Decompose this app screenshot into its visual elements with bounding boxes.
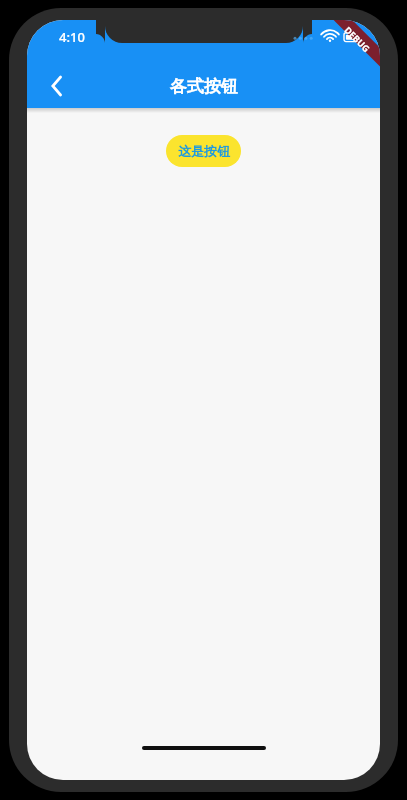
button[interactable]: Back (37, 66, 77, 106)
staticText: 4:10 (59, 28, 85, 46)
button[interactable]: 这是按钮 (166, 135, 241, 167)
staticText: DEBUG (342, 24, 373, 54)
staticText: 各式按钮 (170, 76, 238, 97)
staticText: 这是按钮 (178, 143, 230, 159)
